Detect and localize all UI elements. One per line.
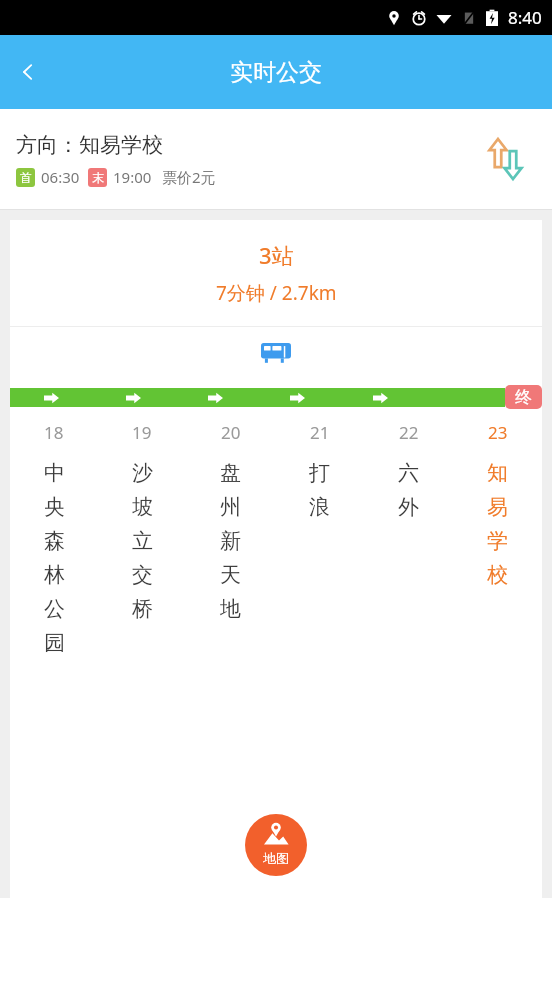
staticText: 19:00 bbox=[113, 167, 152, 187]
staticText: 实时公交 bbox=[230, 58, 322, 87]
staticText: 外 bbox=[398, 494, 419, 520]
staticText: 票价2元 bbox=[162, 167, 216, 187]
button[interactable]: 19 bbox=[98, 421, 186, 626]
staticText: 末 bbox=[92, 170, 104, 185]
staticText: 21 bbox=[310, 421, 330, 444]
staticText: 沙 bbox=[132, 460, 153, 486]
button[interactable]: Back bbox=[0, 44, 56, 100]
staticText: 天 bbox=[220, 562, 241, 588]
staticText: 新 bbox=[220, 528, 241, 554]
staticText: 22 bbox=[399, 421, 419, 444]
staticText: 校 bbox=[487, 562, 508, 588]
staticText: 06:30 bbox=[41, 167, 80, 187]
staticText: 交 bbox=[132, 562, 153, 588]
button[interactable]: 22 bbox=[364, 421, 453, 524]
staticText: 公 bbox=[44, 596, 65, 622]
button[interactable]: 18 bbox=[10, 421, 98, 660]
staticText: 终 bbox=[515, 387, 532, 408]
button[interactable]: 21 bbox=[275, 421, 364, 524]
staticText: 20 bbox=[221, 421, 241, 444]
button[interactable]: Swap direction bbox=[478, 131, 534, 187]
staticText: 打 bbox=[309, 460, 330, 486]
staticText: 7分钟 / 2.7km bbox=[216, 280, 337, 306]
staticText: 23 bbox=[488, 421, 508, 444]
staticText: 立 bbox=[132, 528, 153, 554]
staticText: 方向：知易学校 bbox=[16, 132, 163, 158]
staticText: 学 bbox=[487, 528, 508, 554]
staticText: 3站 bbox=[259, 240, 294, 270]
staticText: 19 bbox=[132, 421, 152, 444]
button[interactable]: Map bbox=[245, 814, 307, 876]
button[interactable]: 23 bbox=[453, 421, 542, 592]
staticText: 园 bbox=[44, 630, 65, 656]
button[interactable]: 20 bbox=[186, 421, 275, 626]
staticText: 地 bbox=[220, 596, 241, 622]
staticText: 易 bbox=[487, 494, 508, 520]
staticText: 18 bbox=[44, 421, 64, 444]
staticText: 坡 bbox=[132, 494, 153, 520]
staticText: 林 bbox=[44, 562, 65, 588]
staticText: 盘 bbox=[220, 460, 241, 486]
staticText: 森 bbox=[44, 528, 65, 554]
staticText: 中 bbox=[44, 460, 65, 486]
staticText: 首 bbox=[20, 170, 32, 185]
staticText: 8:40 bbox=[508, 6, 542, 29]
staticText: 知 bbox=[487, 460, 508, 486]
staticText: 州 bbox=[220, 494, 241, 520]
staticText: 地图 bbox=[263, 850, 289, 866]
staticText: 央 bbox=[44, 494, 65, 520]
staticText: 浪 bbox=[309, 494, 330, 520]
staticText: 六 bbox=[398, 460, 419, 486]
staticText: 桥 bbox=[132, 596, 153, 622]
